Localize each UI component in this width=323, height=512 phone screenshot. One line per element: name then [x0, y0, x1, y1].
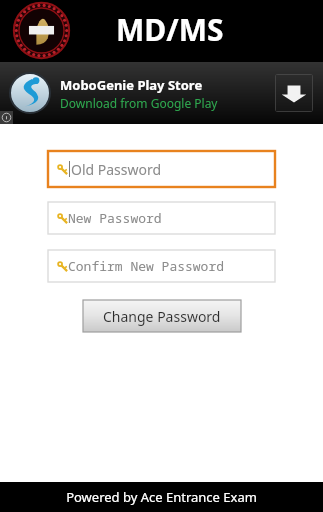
button[interactable]: MoboGenie Play Store	[0, 62, 323, 124]
button[interactable]: Old Password	[48, 151, 275, 187]
button[interactable]: New Password	[48, 202, 275, 234]
other: Ace Entrance Exam logo	[13, 2, 70, 59]
staticText: Change Password	[103, 307, 221, 326]
button[interactable]: Confirm New Password	[48, 250, 275, 282]
staticText: New Password	[68, 209, 162, 227]
button[interactable]: Change Password	[83, 300, 241, 332]
staticText: Powered by Ace Entrance Exam	[66, 488, 257, 506]
button[interactable]: Download	[275, 74, 313, 112]
staticText: MoboGenie Play Store	[60, 76, 203, 94]
staticText: MD/MS	[116, 9, 224, 50]
staticText: Confirm New Password	[68, 257, 225, 275]
other: Ad info	[0, 111, 13, 124]
staticText: Download from Google Play	[60, 95, 218, 111]
staticText: Old Password	[71, 160, 162, 179]
